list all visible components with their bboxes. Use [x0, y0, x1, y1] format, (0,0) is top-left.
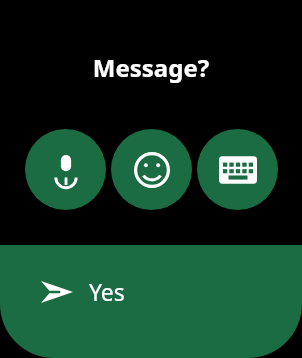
staticText: Yes — [89, 276, 125, 307]
staticText: Message? — [0, 51, 302, 84]
button[interactable]: Voice input — [25, 129, 106, 210]
button[interactable]: Emoji — [111, 129, 192, 210]
button[interactable]: Yes — [0, 245, 302, 358]
button[interactable]: Keyboard — [197, 129, 278, 210]
